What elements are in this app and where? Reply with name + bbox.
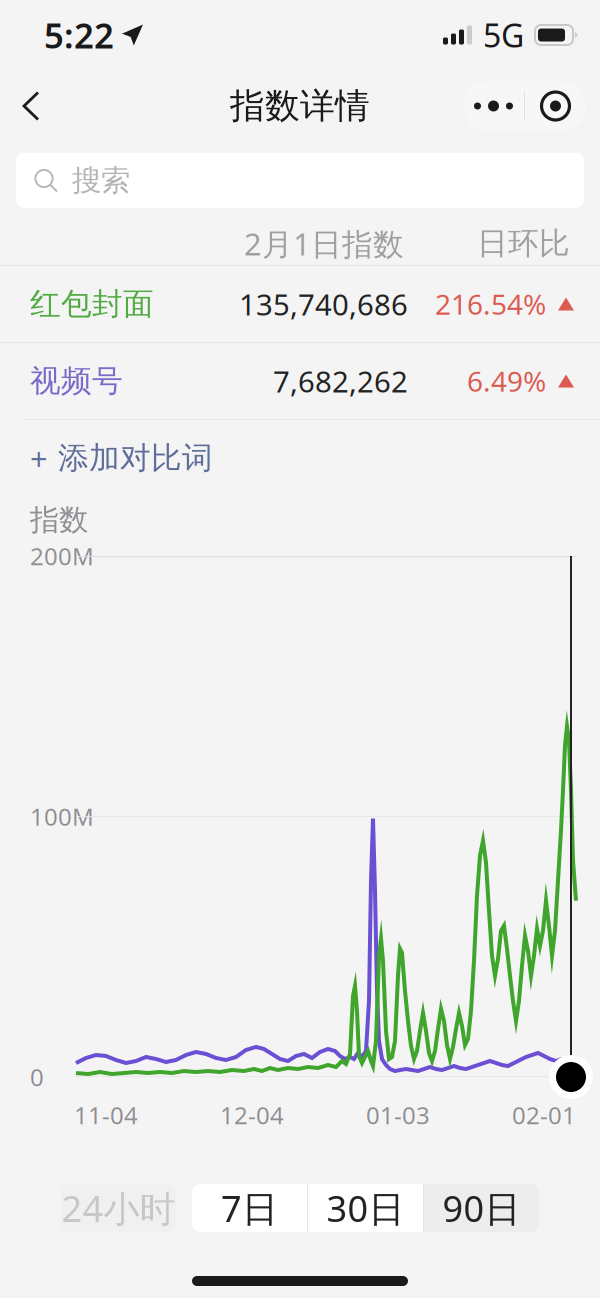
staticText: 6.49% [467, 362, 546, 400]
button[interactable]: 24小时 [61, 1184, 176, 1232]
button[interactable]: 红包封面 [0, 266, 600, 342]
staticText: 5:22 [44, 12, 114, 58]
staticText: 02-01 [512, 1099, 576, 1131]
staticText: + [30, 438, 48, 478]
staticText: 0 [30, 1061, 44, 1093]
staticText: 100M [30, 801, 94, 832]
staticText: 指数详情 [230, 85, 370, 127]
button[interactable]: 视频号 [0, 343, 600, 419]
staticText: 12-04 [220, 1099, 284, 1131]
button[interactable]: 搜索 [16, 153, 584, 208]
staticText: 90日 [442, 1184, 520, 1232]
staticText: 135,740,686 [239, 284, 408, 323]
button[interactable]: More and close [463, 81, 586, 131]
staticText: 指数 [30, 502, 88, 538]
staticText: 216.54% [435, 285, 546, 323]
staticText: 24小时 [61, 1184, 175, 1232]
staticText: 日环比 [477, 225, 570, 262]
staticText: 11-04 [74, 1099, 138, 1131]
staticText: 30日 [326, 1184, 404, 1232]
staticText: 7日 [221, 1184, 278, 1232]
staticText: 200M [30, 540, 94, 572]
staticText: 2月1日指数 [244, 223, 404, 264]
staticText: 7,682,262 [273, 361, 408, 400]
staticText: 搜索 [72, 162, 130, 198]
staticText: 红包封面 [30, 285, 154, 323]
button[interactable]: 7日 [192, 1184, 307, 1232]
staticText: 5G [483, 14, 524, 56]
button[interactable]: 90日 [424, 1184, 539, 1232]
staticText: 01-03 [366, 1099, 430, 1131]
button[interactable]: + [0, 420, 600, 496]
button[interactable]: Back [14, 79, 63, 133]
staticText: 视频号 [30, 362, 123, 400]
button[interactable]: 30日 [308, 1184, 423, 1232]
staticText: 添加对比词 [58, 439, 213, 477]
